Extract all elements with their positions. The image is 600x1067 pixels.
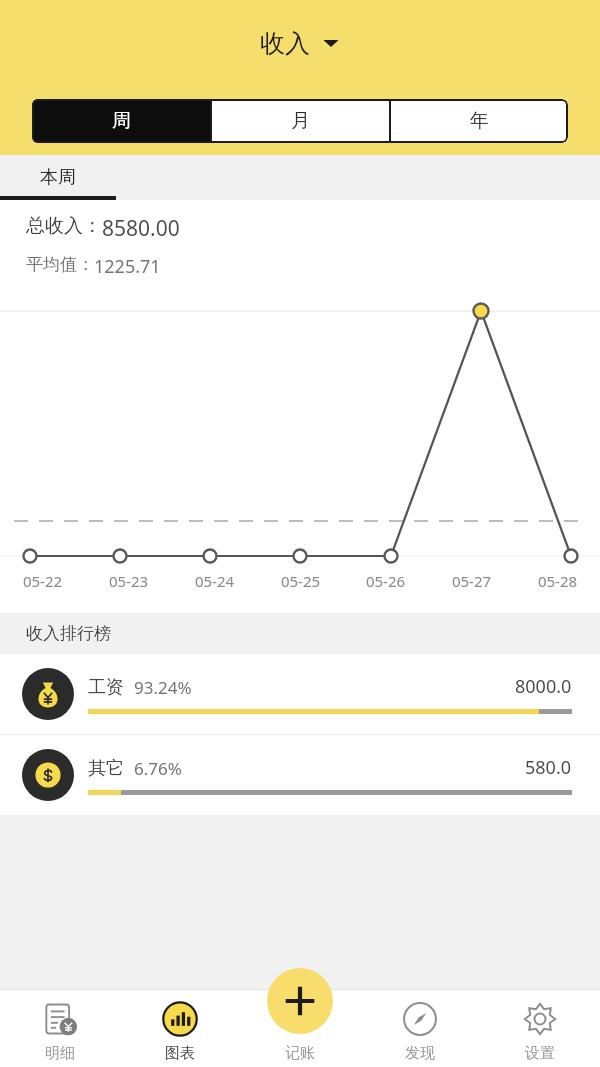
staticText: 年 bbox=[470, 109, 489, 133]
staticText: 05-23 bbox=[86, 571, 171, 591]
button[interactable]: 图表 Charts bbox=[120, 989, 240, 1067]
staticText: 工资 bbox=[88, 676, 124, 699]
button[interactable]: 设置 Settings bbox=[480, 989, 600, 1067]
staticText: 05-27 bbox=[429, 571, 514, 591]
staticText: 收入 bbox=[260, 28, 310, 59]
staticText: 图表 bbox=[165, 1044, 195, 1063]
staticText: 8580.00 bbox=[102, 214, 180, 243]
button[interactable]: 收入 bbox=[0, 0, 600, 86]
staticText: 8000.0 bbox=[515, 674, 572, 699]
other: 明细 Details bbox=[41, 1000, 79, 1038]
staticText: 明细 bbox=[45, 1044, 75, 1063]
staticText: 记账 bbox=[285, 1044, 315, 1063]
button[interactable]: 年 bbox=[391, 99, 568, 143]
staticText: 05-26 bbox=[343, 571, 428, 591]
staticText: 05-28 bbox=[515, 571, 600, 591]
staticText: 05-24 bbox=[172, 571, 257, 591]
staticText: 收入排行榜 bbox=[26, 623, 111, 644]
button[interactable]: 记账 bbox=[240, 989, 360, 1067]
button[interactable]: 月 bbox=[212, 99, 389, 143]
button[interactable]: 本周 bbox=[0, 155, 116, 200]
staticText: 05-22 bbox=[0, 571, 85, 591]
staticText: 总收入： bbox=[26, 214, 102, 238]
button[interactable]: 记账 Add record bbox=[267, 968, 333, 1034]
button[interactable]: 其它 bbox=[0, 735, 600, 815]
staticText: 05-25 bbox=[258, 571, 343, 591]
other: 图表 Charts bbox=[161, 1000, 199, 1038]
staticText: 1225.71 bbox=[94, 254, 161, 279]
staticText: 580.0 bbox=[525, 755, 572, 780]
button[interactable]: 工资 bbox=[0, 654, 600, 734]
staticText: 本周 bbox=[40, 166, 76, 189]
other: 发现 Discover bbox=[401, 1000, 439, 1038]
staticText: 93.24% bbox=[134, 676, 192, 699]
button[interactable]: 发现 Discover bbox=[360, 989, 480, 1067]
staticText: 平均值： bbox=[26, 254, 94, 275]
staticText: 6.76% bbox=[134, 757, 182, 780]
staticText: 月 bbox=[291, 109, 310, 133]
other: 设置 Settings bbox=[521, 1000, 559, 1038]
staticText: 周 bbox=[112, 109, 131, 133]
button[interactable]: 明细 Details bbox=[0, 989, 120, 1067]
staticText: 设置 bbox=[525, 1044, 555, 1063]
staticText: 其它 bbox=[88, 757, 124, 780]
staticText: 发现 bbox=[405, 1044, 435, 1063]
button[interactable]: 周 bbox=[32, 99, 210, 143]
